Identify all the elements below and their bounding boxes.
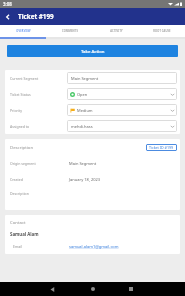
staticText: Contact	[10, 219, 26, 225]
staticText: Take Action	[81, 48, 105, 54]
button[interactable]: Open	[67, 88, 177, 100]
button[interactable]: ACTIVITY	[93, 25, 139, 37]
staticText: Assigned to	[10, 124, 67, 129]
staticText: Ticket #199	[18, 12, 54, 21]
staticText: COMMENTS	[62, 29, 78, 33]
staticText: Ticket ID #199	[149, 145, 174, 150]
staticText: OVERVIEW	[16, 29, 31, 33]
staticText: Current Segment	[10, 76, 67, 81]
button[interactable]: Medium	[67, 104, 177, 116]
staticText: Main Segment	[71, 76, 99, 81]
button[interactable]: OVERVIEW	[0, 25, 47, 37]
staticText: Created	[10, 177, 69, 182]
staticText: ACTIVITY	[110, 29, 123, 33]
staticText: Priority	[10, 108, 67, 113]
staticText: Description	[10, 144, 34, 150]
button[interactable]: Take Action	[7, 45, 178, 57]
button[interactable]: Back	[0, 8, 16, 25]
button[interactable]: Recent apps	[124, 282, 138, 296]
button[interactable]: Back	[45, 282, 59, 296]
staticText: mehdi.hass	[71, 124, 93, 129]
staticText: Origin segment	[10, 161, 69, 166]
button[interactable]: ROOT CAUSE	[139, 25, 185, 37]
staticText: Ticket Status	[10, 92, 67, 97]
staticText: Main Segment	[69, 161, 97, 166]
staticText: Medium	[77, 108, 93, 113]
staticText: samual.alam1@gmail.com	[69, 244, 119, 249]
button[interactable]: mehdi.hass	[67, 120, 177, 132]
button[interactable]: COMMENTS	[47, 25, 93, 37]
button[interactable]: samual.alam1@gmail.com	[69, 244, 119, 249]
staticText: ROOT CAUSE	[153, 29, 171, 33]
staticText: Email	[13, 244, 69, 249]
button[interactable]: Ticket ID #199	[146, 144, 177, 151]
button[interactable]: Home	[86, 282, 100, 296]
button[interactable]: Main Segment	[67, 72, 177, 84]
staticText: 3:08	[3, 1, 12, 7]
staticText: Description	[10, 191, 29, 196]
staticText: January 18, 2023	[69, 177, 101, 182]
staticText: Open	[77, 92, 88, 97]
staticText: Samual Alam	[10, 231, 39, 237]
